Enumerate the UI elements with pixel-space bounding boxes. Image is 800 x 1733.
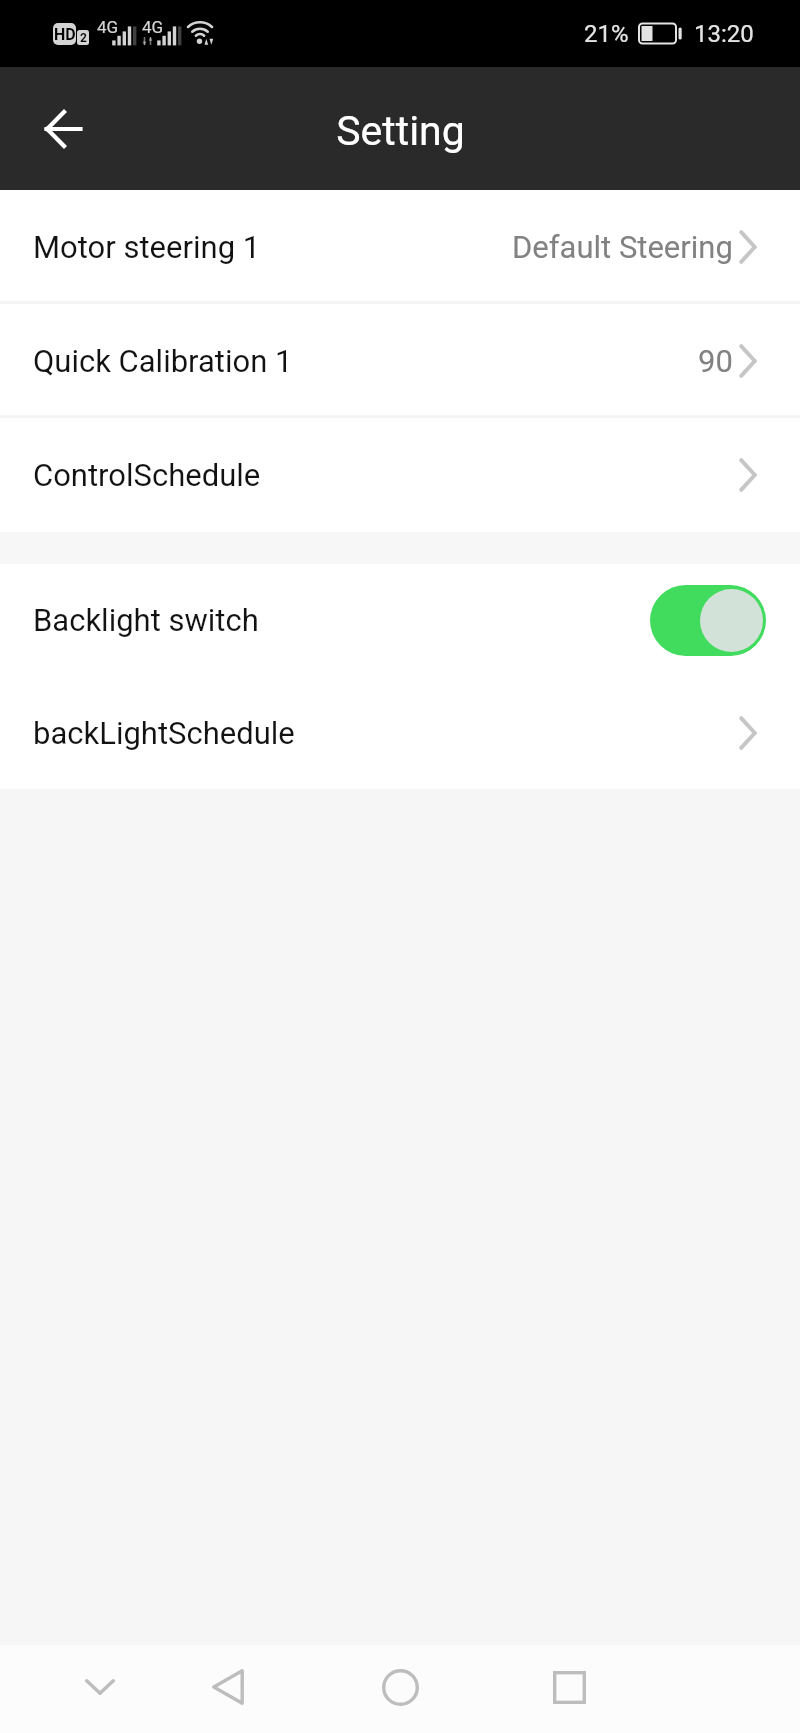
staticText: 2: [80, 31, 87, 45]
button[interactable]: ControlSchedule: [0, 418, 800, 532]
button[interactable]: Motor steering 1: [0, 190, 800, 304]
button[interactable]: Back: [23, 89, 103, 169]
button[interactable]: Recent apps: [529, 1647, 609, 1727]
button[interactable]: Backlight switch, on: [650, 585, 766, 656]
button[interactable]: Back: [188, 1647, 268, 1727]
staticText: Quick Calibration 1: [33, 343, 293, 379]
button[interactable]: Hide keyboard: [60, 1647, 140, 1727]
staticText: HD: [54, 25, 76, 44]
staticText: Backlight switch: [33, 602, 259, 638]
staticText: Default Steering: [512, 229, 733, 265]
staticText: 13:20: [694, 20, 754, 48]
staticText: Setting: [336, 107, 465, 155]
button[interactable]: backLightSchedule: [0, 676, 800, 789]
staticText: backLightSchedule: [33, 715, 295, 751]
button[interactable]: Quick Calibration 1: [0, 304, 800, 418]
staticText: Motor steering 1: [33, 229, 261, 265]
button[interactable]: Home: [360, 1647, 440, 1727]
staticText: ControlSchedule: [33, 457, 261, 493]
staticText: 90: [698, 343, 733, 379]
button[interactable]: Backlight switch: [0, 564, 800, 676]
staticText: 4G: [97, 17, 119, 37]
staticText: 21%: [584, 20, 629, 48]
staticText: 4G: [142, 17, 164, 37]
